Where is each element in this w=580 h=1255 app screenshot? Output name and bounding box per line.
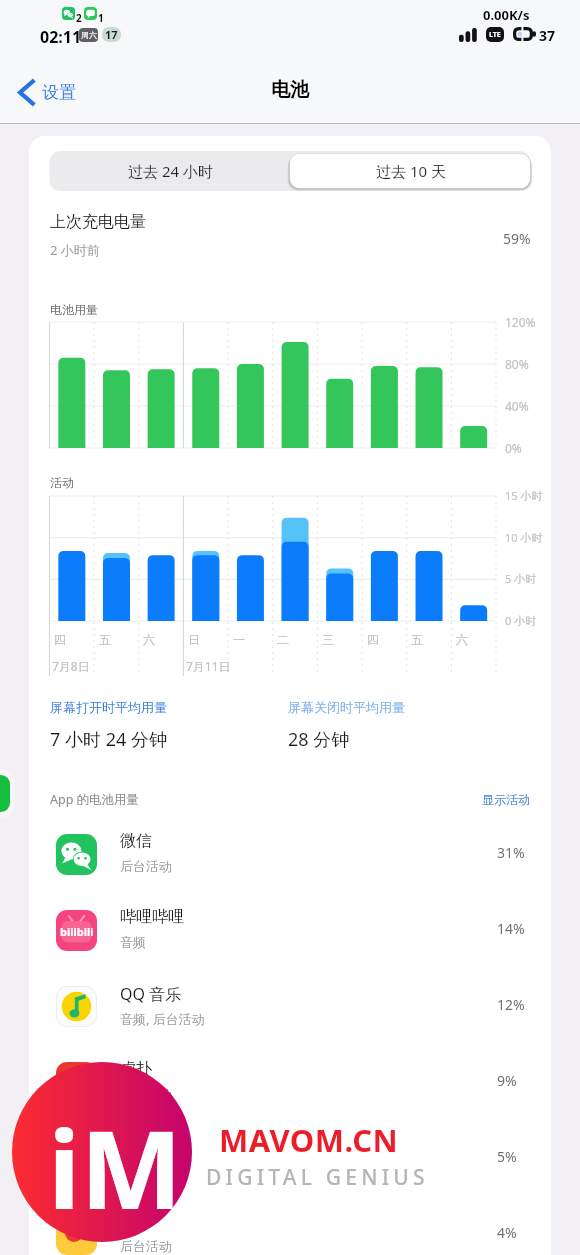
staticText: 37 [539, 26, 556, 45]
staticText: 31% [497, 843, 525, 862]
staticText: 15 小时 [505, 488, 543, 503]
staticText: 后台活动 [120, 1238, 172, 1254]
staticText: 80% [505, 356, 529, 372]
staticText: 四 [54, 632, 66, 647]
button[interactable]: 显示活动 [474, 784, 538, 815]
staticText: 六 [143, 632, 155, 647]
button[interactable]: 知乎 [29, 1119, 551, 1195]
staticText: 五 [99, 632, 111, 647]
staticText: 9% [497, 1071, 517, 1090]
staticText: 4% [497, 1223, 517, 1242]
staticText: 四 [367, 632, 379, 647]
staticText: 后台活动 [120, 1086, 172, 1102]
staticText: 周六 [81, 30, 97, 40]
staticText: 0 小时 [505, 613, 537, 628]
staticText: 7月11日 [186, 658, 231, 674]
staticText: LTE [489, 30, 501, 40]
button[interactable]: Floating assistant [0, 769, 15, 818]
staticText: 后台活动 [120, 1162, 172, 1178]
staticText: 10 小时 [505, 530, 543, 545]
staticText: 三 [322, 632, 334, 647]
staticText: 二 [277, 632, 289, 647]
staticText: 活动 [50, 475, 74, 490]
staticText: 过去 24 小时 [128, 161, 213, 181]
staticText: QQ 音乐 [120, 983, 182, 1005]
staticText: 电池用量 [50, 302, 98, 317]
staticText: 7 小时 24 分钟 [50, 727, 167, 752]
staticText: 120% [505, 314, 536, 330]
staticText: 屏幕打开时平均用量 [50, 699, 167, 715]
staticText: bilibili [60, 924, 94, 939]
button[interactable]: 设置 [0, 69, 86, 115]
staticText: 哔哩哔哩 [120, 907, 184, 927]
staticText: 日 [188, 632, 200, 647]
staticText: 虎扑 [120, 1059, 152, 1079]
button[interactable]: QQ 音乐 [29, 967, 551, 1043]
staticText: 5 小时 [505, 571, 537, 586]
staticText: 12% [497, 995, 525, 1014]
staticText: 后台活动 [120, 858, 172, 874]
staticText: 一 [233, 632, 245, 647]
staticText: MAVOM.CN [219, 1119, 399, 1161]
staticText: 7月8日 [52, 658, 90, 674]
staticText: 5% [497, 1147, 517, 1166]
staticText: App 的电池用量 [50, 791, 140, 808]
staticText: 音频, 后台活动 [120, 1010, 205, 1028]
staticText: 28 分钟 [288, 727, 350, 752]
button[interactable]: 微博 [29, 1195, 551, 1255]
staticText: 五 [411, 632, 423, 647]
staticText: 2 [76, 11, 82, 25]
button[interactable]: 过去 10 天 [290, 151, 531, 191]
staticText: 1 [98, 11, 104, 25]
staticText: 14% [497, 919, 525, 938]
staticText: 微博 [120, 1211, 152, 1231]
staticText: DIGITAL GENIUS [206, 1163, 429, 1192]
staticText: 0% [505, 440, 522, 456]
staticText: 上次充电电量 [50, 212, 146, 232]
staticText: 2 小时前 [50, 241, 100, 259]
staticText: 微信 [120, 831, 152, 851]
staticText: 02:11 [40, 26, 82, 48]
staticText: 知乎 [120, 1135, 152, 1155]
staticText: 设置 [42, 82, 76, 103]
button[interactable]: 微信 [29, 815, 551, 891]
staticText: iM [48, 1094, 183, 1241]
staticText: 17 [105, 27, 118, 42]
staticText: 屏幕关闭时平均用量 [288, 699, 405, 715]
button[interactable]: bilibili [29, 891, 551, 967]
staticText: 显示活动 [482, 792, 530, 807]
staticText: 电池 [271, 78, 309, 102]
staticText: 40% [505, 398, 529, 414]
staticText: 六 [456, 632, 468, 647]
button[interactable]: 虎扑 [29, 1043, 551, 1119]
staticText: 音频 [120, 934, 146, 950]
staticText: 0.00K/s [483, 6, 530, 24]
staticText: 59% [503, 229, 531, 248]
button[interactable]: 过去 24 小时 [50, 151, 290, 191]
staticText: 过去 10 天 [376, 161, 446, 181]
staticText: 知乎 [62, 1149, 92, 1168]
